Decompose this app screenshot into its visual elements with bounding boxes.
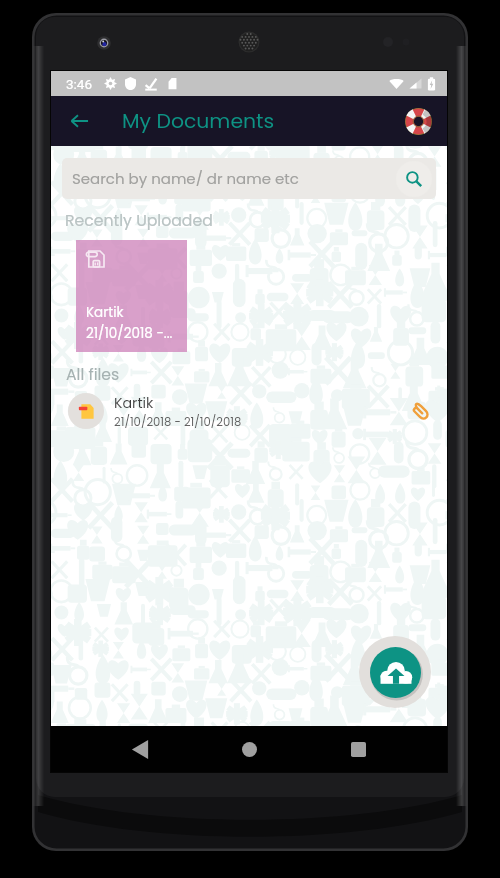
staticText: Kartik bbox=[114, 393, 154, 413]
button[interactable]: Search by name/ dr name etc bbox=[62, 158, 436, 199]
button[interactable]: Upload document bbox=[359, 636, 431, 708]
staticText: 21/10/2018 - 21/10/2018 bbox=[114, 414, 242, 430]
button[interactable]: Kartik bbox=[76, 240, 187, 352]
staticText: Search by name/ dr name etc bbox=[72, 168, 299, 189]
button[interactable]: Back bbox=[120, 729, 160, 769]
button[interactable]: Attachment bbox=[403, 394, 437, 428]
button[interactable]: Search bbox=[396, 161, 432, 197]
staticText: 21/10/2018 -... bbox=[86, 324, 173, 343]
button[interactable]: Help bbox=[401, 104, 435, 138]
button[interactable]: Recents bbox=[338, 729, 378, 769]
staticText: All files bbox=[66, 364, 120, 386]
button[interactable]: Back bbox=[62, 104, 96, 138]
staticText: 3:46 bbox=[66, 76, 93, 92]
staticText: Kartik bbox=[86, 303, 124, 322]
staticText: Recently Uploaded bbox=[65, 210, 213, 232]
staticText: My Documents bbox=[122, 107, 275, 136]
button[interactable]: Kartik bbox=[51, 386, 447, 436]
button[interactable]: Home bbox=[229, 729, 269, 769]
